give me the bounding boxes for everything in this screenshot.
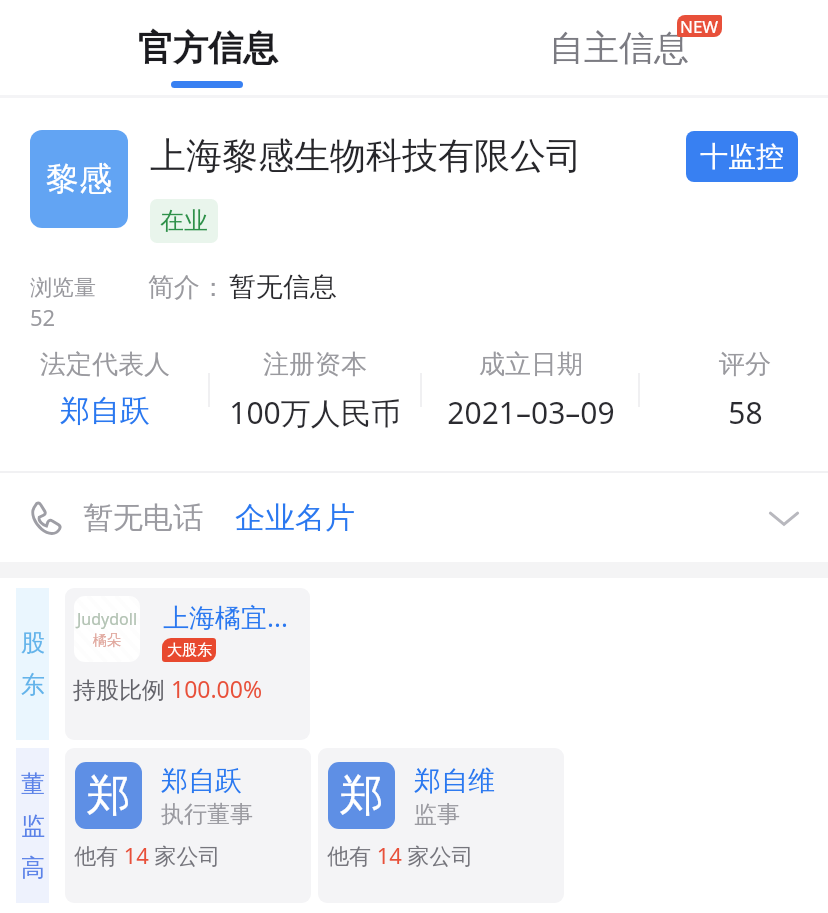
staticText: 官方信息 bbox=[138, 26, 278, 70]
staticText: 2021–03–09 bbox=[447, 392, 615, 430]
staticText: 在业 bbox=[160, 206, 208, 236]
staticText: 董 bbox=[21, 769, 45, 799]
staticText: 暂无信息 bbox=[229, 270, 337, 304]
staticText: 暂无电话 bbox=[83, 499, 203, 537]
button[interactable]: Expand bbox=[754, 488, 814, 548]
button[interactable]: 董 bbox=[16, 748, 49, 903]
staticText: NEW bbox=[680, 15, 719, 37]
staticText: 黎感 bbox=[46, 158, 112, 200]
button[interactable]: 注册资本 bbox=[215, 348, 415, 430]
button[interactable]: 官方信息 bbox=[110, 0, 305, 96]
button[interactable]: 法定代表人 bbox=[5, 348, 205, 430]
staticText: 58 bbox=[728, 392, 763, 430]
staticText: 评分 bbox=[719, 348, 771, 381]
staticText: 持股比例 100.00% bbox=[73, 673, 263, 704]
other: Phone bbox=[28, 501, 62, 535]
staticText: 郑自跃 bbox=[60, 392, 150, 430]
staticText: 注册资本 bbox=[263, 348, 367, 381]
button[interactable]: Judydoll bbox=[65, 588, 310, 740]
staticText: 监事 bbox=[414, 800, 460, 829]
staticText: 企业名片 bbox=[235, 499, 355, 537]
staticText: 郑自跃 bbox=[161, 764, 242, 798]
button[interactable]: 郑 bbox=[318, 748, 564, 903]
staticText: 100万人民币 bbox=[229, 392, 401, 430]
staticText: 大股东 bbox=[167, 641, 212, 660]
staticText: 自主信息 bbox=[549, 26, 689, 70]
staticText: 郑自维 bbox=[414, 764, 495, 798]
staticText: 执行董事 bbox=[161, 800, 253, 829]
staticText: 他有 14 家公司 bbox=[74, 840, 221, 870]
staticText: 高 bbox=[21, 853, 45, 883]
staticText: Judydoll bbox=[77, 608, 138, 630]
staticText: 监 bbox=[21, 811, 45, 841]
staticText: 郑 bbox=[87, 768, 131, 823]
staticText: 东 bbox=[21, 670, 45, 700]
button[interactable]: 成立日期 bbox=[431, 348, 631, 430]
staticText: 橘朵 bbox=[93, 632, 121, 650]
button[interactable]: 股 bbox=[16, 588, 49, 740]
staticText: 52 bbox=[30, 302, 56, 332]
staticText: 上海黎感生物科技有限公司 bbox=[150, 133, 582, 178]
staticText: 十监控 bbox=[700, 139, 784, 174]
staticText: 他有 14 家公司 bbox=[327, 840, 474, 870]
button[interactable]: Phone bbox=[0, 473, 828, 562]
staticText: 法定代表人 bbox=[40, 348, 170, 381]
button[interactable]: 十监控 bbox=[686, 131, 798, 182]
staticText: 简介： bbox=[148, 271, 226, 304]
button[interactable]: 企业名片 bbox=[225, 483, 365, 553]
staticText: 成立日期 bbox=[479, 348, 583, 381]
button[interactable]: 在业 bbox=[150, 199, 218, 243]
button[interactable]: 黎感 bbox=[30, 130, 128, 228]
staticText: 股 bbox=[21, 628, 45, 658]
staticText: 郑 bbox=[340, 768, 384, 823]
staticText: 上海橘宜... bbox=[163, 599, 288, 635]
staticText: 浏览量 bbox=[30, 274, 96, 302]
button[interactable]: 郑 bbox=[65, 748, 311, 903]
button[interactable]: 评分 bbox=[645, 348, 828, 430]
button[interactable]: 自主信息 bbox=[521, 0, 716, 96]
